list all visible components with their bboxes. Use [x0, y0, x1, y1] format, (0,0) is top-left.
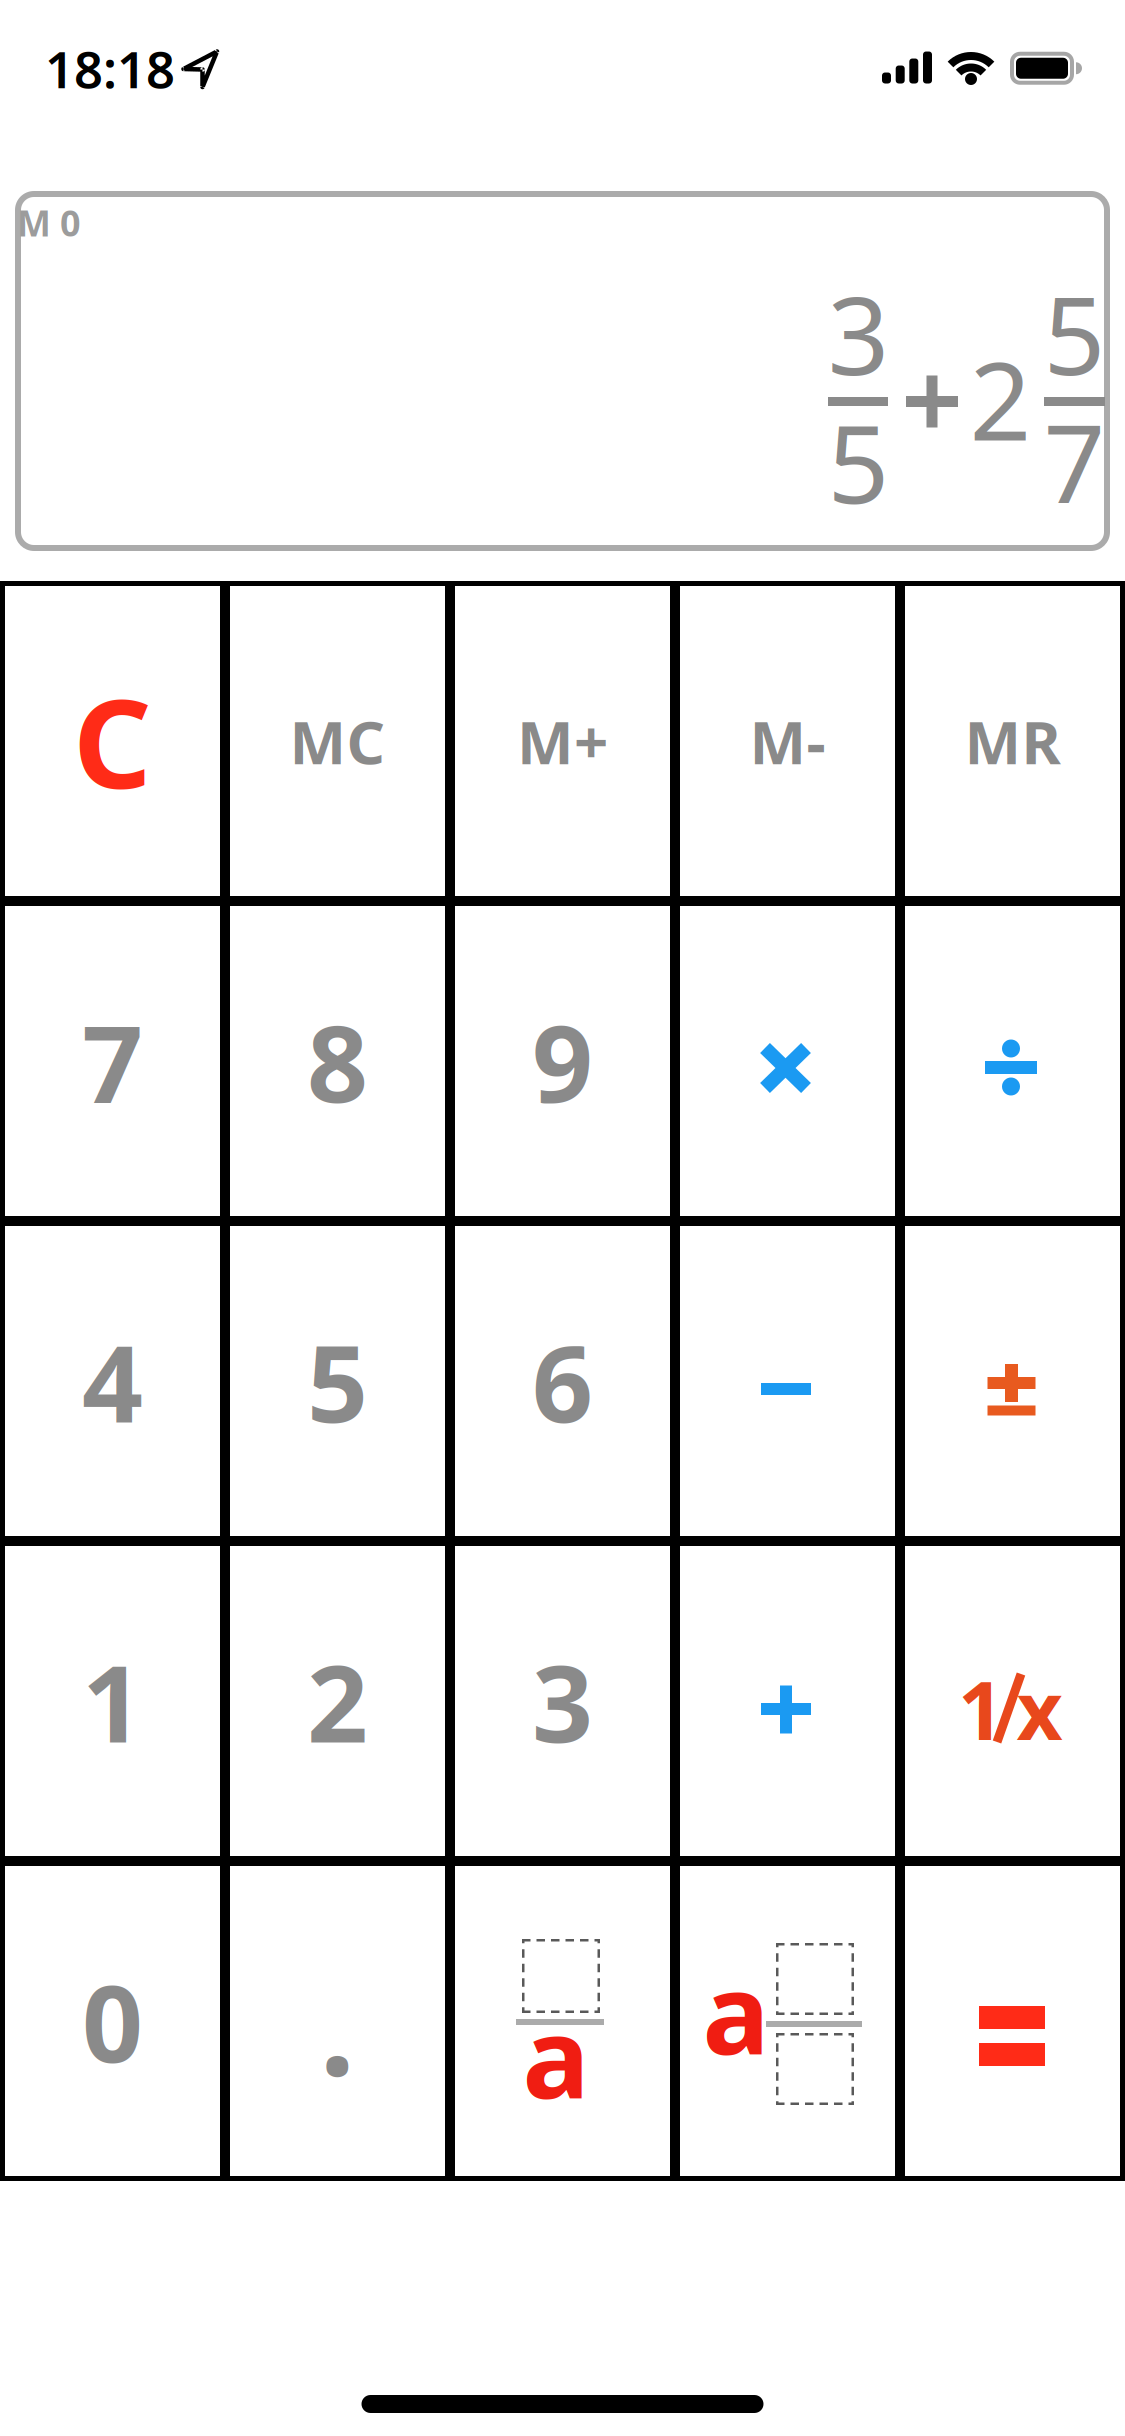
button[interactable]: 7 [0, 901, 225, 1221]
button[interactable]: 1 [0, 1541, 225, 1861]
button[interactable]: 9 [450, 901, 675, 1221]
button[interactable]: Add [675, 1541, 900, 1861]
staticText: 2 [969, 327, 1031, 470]
button[interactable]: MC [225, 581, 450, 901]
button[interactable]: C [0, 581, 225, 901]
button[interactable]: Multiply [675, 901, 900, 1221]
staticText: 3 [532, 1630, 593, 1772]
button[interactable]: Reciprocal [900, 1541, 1125, 1861]
staticText: 5 [827, 390, 889, 533]
button[interactable]: Equals [900, 1861, 1125, 2181]
button[interactable]: M- [675, 581, 900, 901]
button[interactable]: Plus minus [900, 1221, 1125, 1541]
staticText: M+ [517, 701, 608, 781]
staticText: . [319, 1942, 355, 2110]
staticText: MR [964, 701, 1060, 781]
staticText: 4 [82, 1310, 143, 1452]
button[interactable]: Mixed number [675, 1861, 900, 2181]
staticText: 5 [307, 1310, 368, 1452]
button[interactable]: . [225, 1861, 450, 2181]
staticText: 7 [1043, 390, 1105, 533]
button[interactable]: 4 [0, 1221, 225, 1541]
button[interactable]: M+ [450, 581, 675, 901]
staticText: 0 [82, 1950, 143, 2092]
button[interactable]: MR [900, 581, 1125, 901]
staticText: 8 [307, 990, 368, 1132]
button[interactable]: 5 [225, 1221, 450, 1541]
staticText: 18:18 [45, 35, 175, 102]
staticText: M- [749, 701, 825, 781]
staticText: 7 [82, 990, 143, 1132]
staticText: a [702, 1937, 769, 2085]
staticText: C [73, 660, 152, 822]
staticText: 5 [1043, 261, 1105, 405]
button[interactable]: 0 [0, 1861, 225, 2181]
staticText: 9 [532, 990, 593, 1132]
staticText: a [522, 1981, 589, 2129]
button[interactable]: 3 [450, 1541, 675, 1861]
staticText: M 0 [17, 199, 81, 246]
button[interactable]: Divide [900, 901, 1125, 1221]
staticText: 3 [827, 261, 889, 405]
staticText: 2 [307, 1630, 368, 1772]
staticText: 1 [82, 1630, 143, 1772]
button[interactable]: 2 [225, 1541, 450, 1861]
staticText: x [1016, 1656, 1062, 1762]
staticText: 6 [532, 1310, 593, 1452]
button[interactable]: Fraction [450, 1861, 675, 2181]
staticText: MC [289, 701, 385, 781]
button[interactable]: 6 [450, 1221, 675, 1541]
button[interactable]: 8 [225, 901, 450, 1221]
button[interactable]: Subtract [675, 1221, 900, 1541]
staticText: 1 [958, 1656, 1004, 1762]
